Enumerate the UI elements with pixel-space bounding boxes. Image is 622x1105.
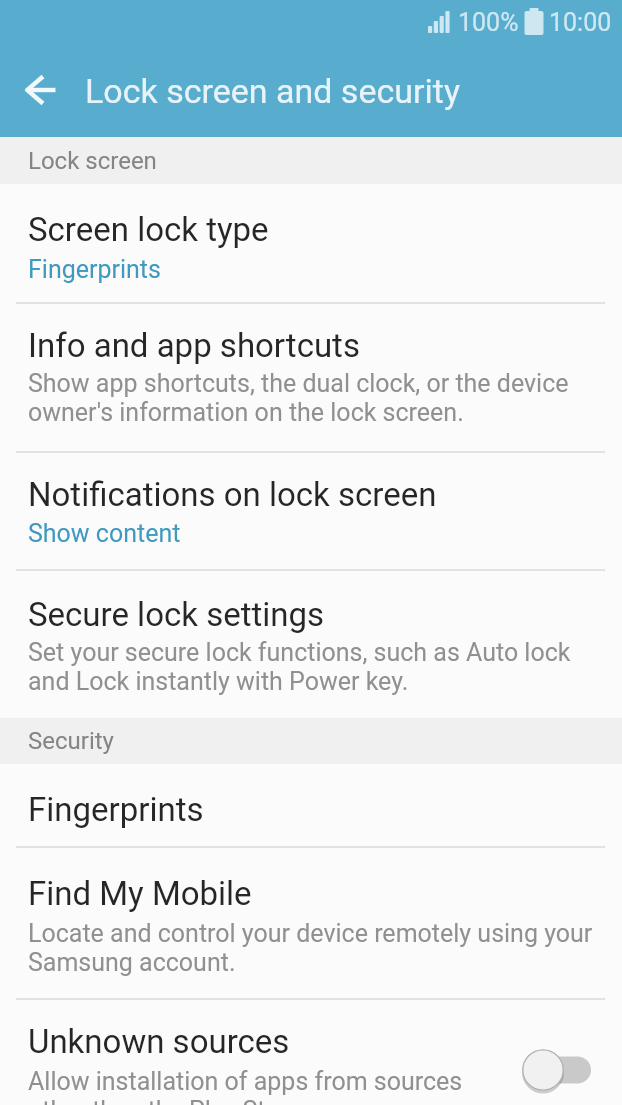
staticText: Show content xyxy=(28,519,181,548)
staticText: Show app shortcuts, the dual clock, or t… xyxy=(28,369,569,427)
staticText: Fingerprints xyxy=(28,790,204,829)
staticText: Security xyxy=(28,727,114,755)
staticText: Screen lock type xyxy=(28,210,269,249)
button[interactable]: Fingerprints xyxy=(0,764,622,846)
staticText: Lock screen xyxy=(28,147,157,175)
staticText: Set your secure lock functions, such as … xyxy=(28,638,571,696)
button[interactable]: Info and app shortcuts xyxy=(0,304,622,451)
staticText: Allow installation of apps from sources … xyxy=(28,1067,463,1105)
staticText: Lock screen and security xyxy=(85,71,460,111)
button[interactable]: Notifications on lock screen xyxy=(0,453,622,569)
staticText: Locate and control your device remotely … xyxy=(28,919,593,977)
button[interactable]: Find My Mobile xyxy=(0,848,622,998)
staticText: Info and app shortcuts xyxy=(28,326,360,365)
button[interactable] xyxy=(24,72,60,108)
button[interactable]: Unknown sources xyxy=(0,1000,622,1105)
staticText: Find My Mobile xyxy=(28,874,252,913)
staticText: 10:00 xyxy=(549,8,612,37)
staticText: Fingerprints xyxy=(28,255,161,284)
staticText: Notifications on lock screen xyxy=(28,475,437,514)
button[interactable]: Secure lock settings xyxy=(0,571,622,718)
staticText: 100% xyxy=(458,8,519,37)
staticText: Secure lock settings xyxy=(28,595,325,634)
staticText: Unknown sources xyxy=(28,1022,290,1061)
button[interactable]: Screen lock type xyxy=(0,184,622,302)
